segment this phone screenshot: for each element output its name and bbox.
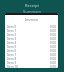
- staticText: 0.00: [50, 53, 56, 57]
- staticText: Item 7: [7, 53, 17, 57]
- staticText: Item 2: [7, 33, 17, 37]
- staticText: 0.00: [50, 61, 56, 65]
- staticText: 0.00: [50, 29, 56, 33]
- staticText: Item 6: [7, 49, 17, 53]
- staticText: Item 3: [7, 37, 17, 41]
- staticText: 0.00: [50, 45, 56, 49]
- staticText: Invoice: [5, 17, 58, 22]
- staticText: 0.00: [50, 49, 56, 53]
- staticText: Item 9: [7, 61, 17, 65]
- staticText: Summary: [23, 9, 42, 14]
- staticText: Item 1: [7, 29, 17, 33]
- staticText: Item 10: [7, 65, 18, 68]
- staticText: Item 8: [7, 57, 17, 61]
- staticText: 0.00: [50, 41, 56, 45]
- staticText: 0.00: [50, 37, 56, 41]
- staticText: 0.00: [50, 25, 56, 29]
- staticText: 0.00: [50, 33, 56, 37]
- staticText: Item 5: [7, 45, 17, 49]
- staticText: 0.00: [50, 65, 56, 68]
- staticText: Receipt: [25, 3, 39, 8]
- staticText: Item 4: [7, 41, 17, 45]
- staticText: Item 0: [7, 25, 17, 29]
- staticText: 0.00: [50, 57, 56, 61]
